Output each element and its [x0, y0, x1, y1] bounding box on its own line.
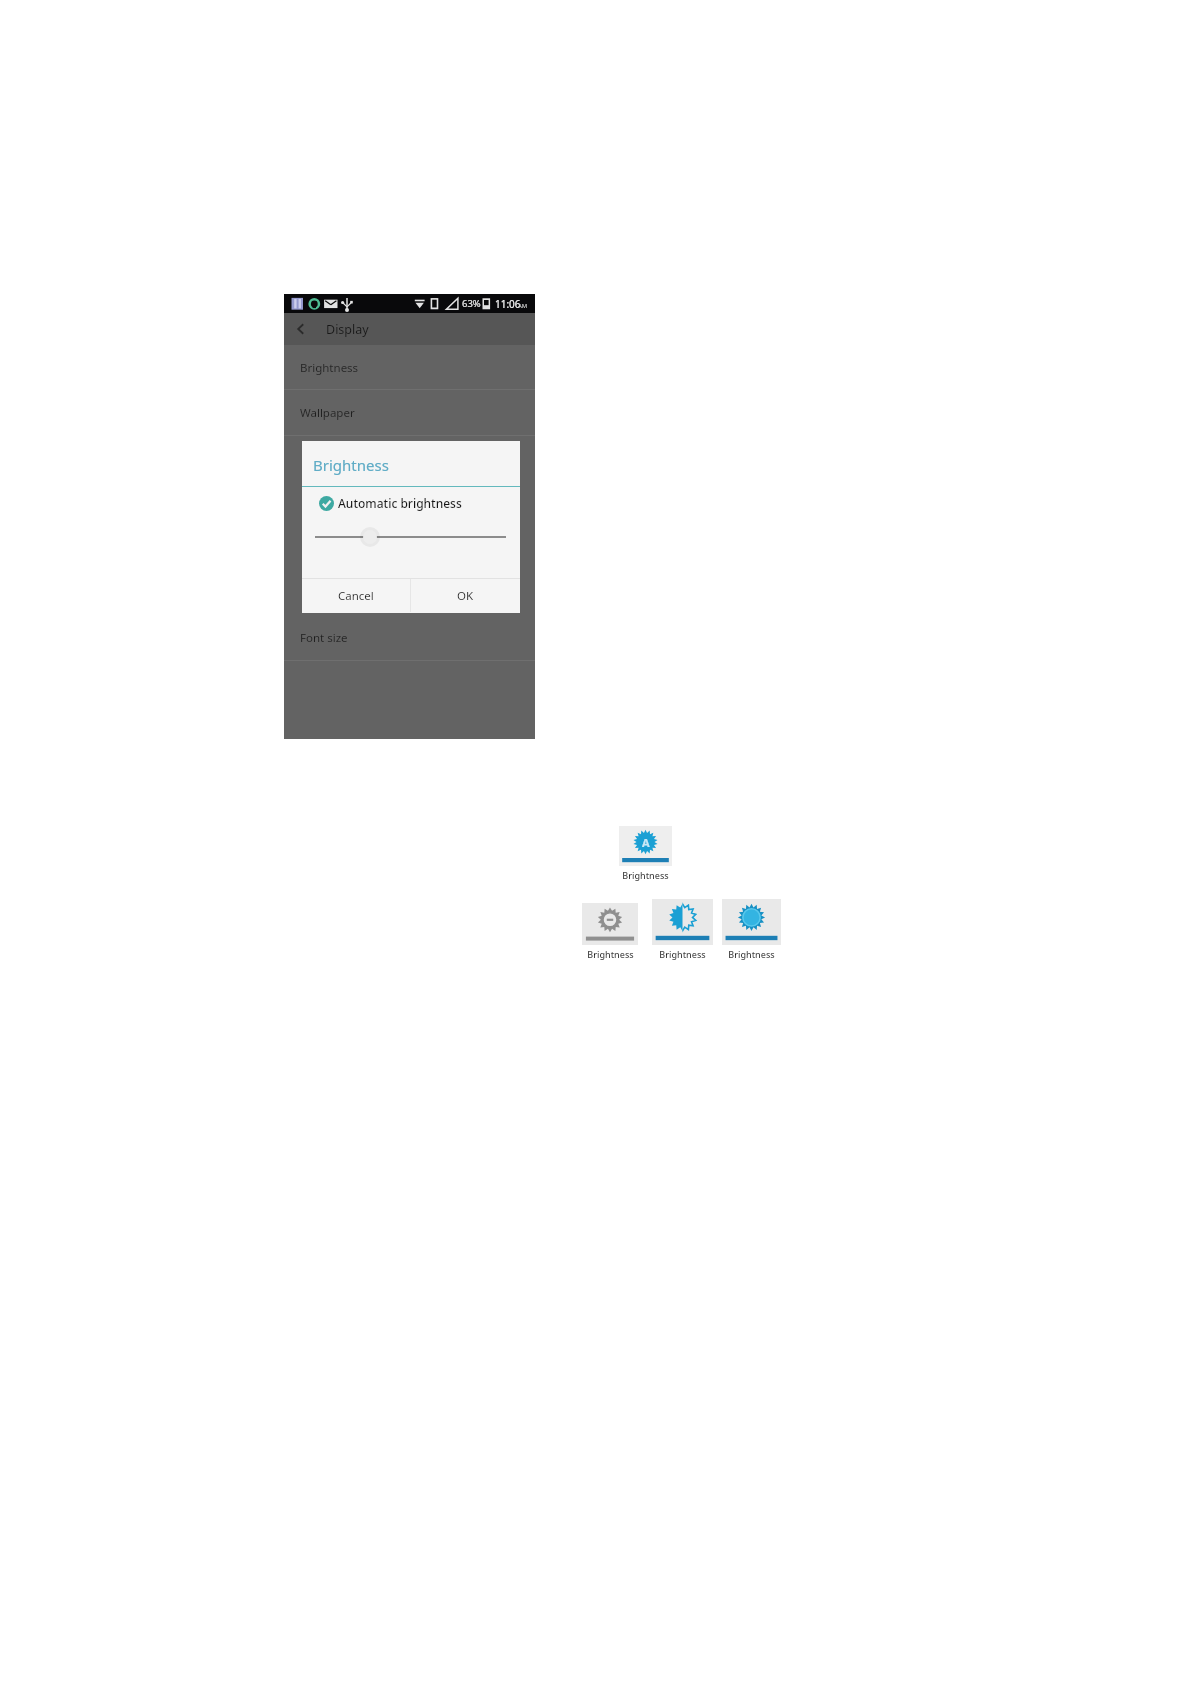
button[interactable]: Brightness: [652, 899, 713, 945]
button[interactable]: Automatic brightness: [319, 491, 462, 515]
staticText: Brightness: [622, 869, 669, 881]
button[interactable]: Brightness: [722, 899, 781, 945]
button[interactable]: Automatic brightness: [619, 826, 672, 866]
staticText: OK: [457, 588, 474, 604]
staticText: Brightness: [587, 948, 634, 960]
staticText: Brightness: [300, 360, 359, 376]
staticText: Brightness: [659, 948, 706, 960]
staticText: Brightness: [728, 948, 775, 960]
staticText: 11:06: [495, 297, 521, 311]
staticText: Wallpaper: [300, 405, 355, 421]
button[interactable]: Back: [284, 313, 317, 345]
staticText: Cancel: [338, 588, 374, 604]
staticText: Display: [326, 321, 369, 338]
button[interactable]: OK: [411, 579, 520, 612]
button[interactable]: Cancel: [302, 579, 410, 612]
staticText: Brightness: [313, 455, 389, 475]
staticText: Automatic brightness: [338, 495, 462, 511]
button[interactable]: Font size: [284, 615, 535, 661]
button[interactable]: Wallpaper: [284, 390, 535, 436]
staticText: AM: [518, 302, 528, 310]
button[interactable]: Brightness: [284, 345, 535, 390]
button[interactable]: Brightness: [582, 903, 638, 945]
staticText: 63%: [462, 297, 481, 310]
staticText: Font size: [300, 630, 348, 646]
staticText: A: [642, 835, 650, 850]
